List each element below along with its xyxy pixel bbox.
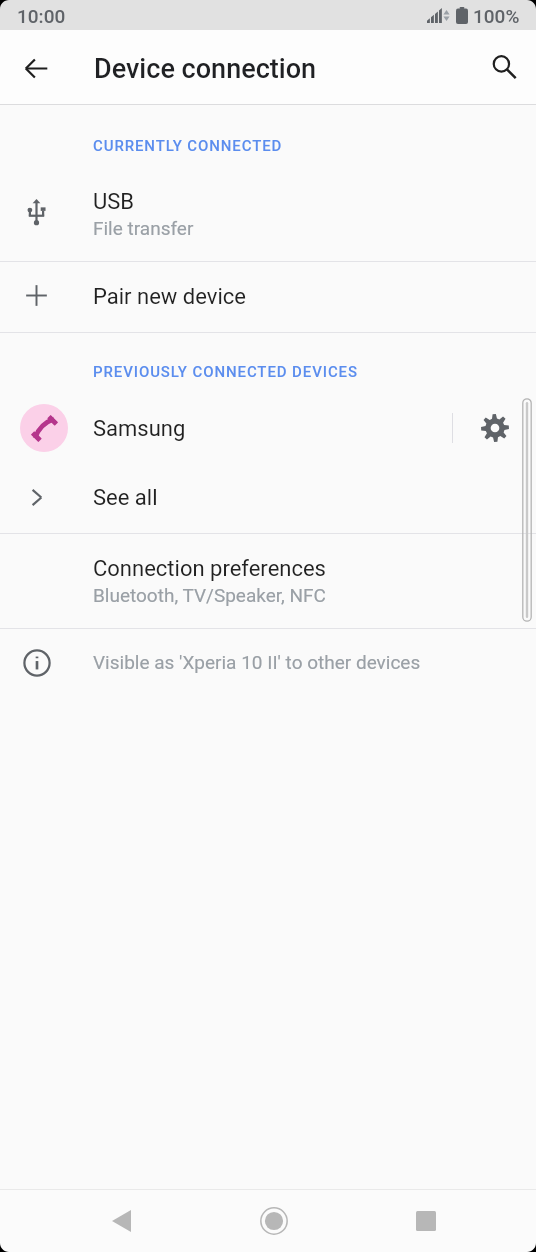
button[interactable]: Search (478, 41, 530, 93)
button[interactable]: See all (0, 467, 536, 533)
button[interactable]: Pair new device (0, 262, 536, 337)
staticText: Samsung (93, 416, 186, 442)
staticText: Visible as 'Xperia 10 II' to other devic… (93, 651, 421, 673)
button[interactable]: Recent apps (373, 1190, 479, 1252)
staticText: USB (93, 189, 135, 215)
staticText: CURRENTLY CONNECTED (93, 137, 283, 155)
button[interactable]: Navigate up (10, 42, 62, 94)
button[interactable]: Home (221, 1190, 327, 1252)
button[interactable]: Back (68, 1190, 174, 1252)
staticText: File transfer (93, 217, 194, 239)
staticText: 100% (473, 5, 520, 27)
button[interactable]: Samsung (0, 395, 452, 461)
staticText: Connection preferences (93, 556, 326, 582)
staticText: Pair new device (93, 284, 246, 310)
button[interactable]: Connection preferences (0, 534, 536, 628)
staticText: Device connection (94, 53, 317, 85)
button[interactable]: Visible as 'Xperia 10 II' to other devic… (0, 629, 536, 697)
staticText: PREVIOUSLY CONNECTED DEVICES (93, 363, 358, 381)
button[interactable]: Device settings (453, 395, 536, 461)
staticText: 10:00 (17, 5, 66, 27)
button[interactable]: USB (0, 155, 536, 261)
staticText: See all (93, 485, 158, 511)
staticText: Bluetooth, TV/Speaker, NFC (93, 584, 326, 606)
